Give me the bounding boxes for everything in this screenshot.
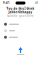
- staticText: JabberUnhappy: [8, 10, 32, 14]
- staticText: ıll: [35, 1, 38, 5]
- staticText: You do this I think: [6, 7, 34, 10]
- staticText: Subtitle goes here: [7, 14, 34, 18]
- staticText: 9:41: [3, 1, 10, 5]
